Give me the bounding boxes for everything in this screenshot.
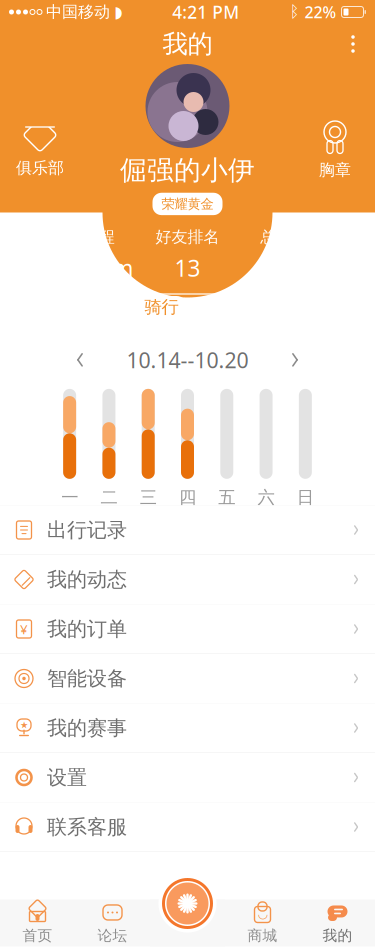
staticText: 徒步 <box>196 296 230 318</box>
button[interactable]: 俱乐部 <box>0 64 80 178</box>
staticText: 胸章 <box>319 160 351 180</box>
button[interactable]: 联系客服 <box>0 802 375 851</box>
staticText: 商城 <box>247 926 277 944</box>
staticText: 我的订单 <box>47 617 127 641</box>
staticText: 联系客服 <box>47 815 127 839</box>
staticText: 四 <box>179 487 196 508</box>
staticText: 出行记录 <box>47 518 127 542</box>
button[interactable]: 我的 <box>300 899 375 946</box>
button[interactable]: 论坛 <box>75 899 150 946</box>
button[interactable]: 胸章 <box>295 64 375 180</box>
button[interactable]: 骑行 <box>135 296 187 318</box>
staticText: 倔强的小伊 <box>120 154 255 187</box>
button[interactable]: 出行记录 <box>0 505 375 554</box>
staticText: 荣耀黄金 <box>161 196 213 212</box>
staticText: 骑行 <box>144 296 178 318</box>
staticText: ★ <box>20 720 28 730</box>
staticText: 总里程 <box>67 227 115 247</box>
staticText: 13 <box>174 253 200 283</box>
staticText: 智能设备 <box>47 666 127 691</box>
staticText: 4:21 PM <box>172 0 239 23</box>
staticText: 三 <box>140 487 157 508</box>
button[interactable]: Previous week <box>58 345 102 375</box>
staticText: 265h <box>258 253 311 283</box>
staticText: ◡ <box>257 907 267 920</box>
button[interactable]: More <box>331 22 375 66</box>
button[interactable]: ★ <box>0 703 375 752</box>
staticText: 好友排名 <box>155 227 219 247</box>
staticText: 俱乐部 <box>16 158 64 178</box>
staticText: 五 <box>218 487 235 508</box>
button[interactable]: ◡ <box>225 899 300 946</box>
button[interactable]: 徒步 <box>187 296 239 318</box>
button[interactable]: Next week <box>273 345 317 375</box>
staticText: 我的 <box>322 926 352 944</box>
button[interactable]: 设置 <box>0 753 375 802</box>
staticText: 日 <box>297 487 314 508</box>
button[interactable]: ¥ <box>0 604 375 653</box>
staticText: 设置 <box>47 765 87 790</box>
staticText: 我的 <box>162 28 212 59</box>
staticText: ᛒ <box>289 4 299 20</box>
staticText: ◗ <box>114 3 122 21</box>
staticText: 5692km <box>48 253 133 283</box>
staticText: 总时间 <box>260 227 308 247</box>
staticText: 首页 <box>22 926 52 944</box>
staticText: 我的赛事 <box>47 716 127 740</box>
staticText: 六 <box>258 487 275 508</box>
button[interactable]: 首页 <box>0 899 75 946</box>
button[interactable]: 我的动态 <box>0 555 375 604</box>
staticText: 论坛 <box>97 926 127 944</box>
staticText: 我的动态 <box>47 567 127 592</box>
button[interactable]: 智能设备 <box>0 654 375 703</box>
staticText: 一 <box>61 487 78 508</box>
staticText: ¥ <box>20 620 28 638</box>
staticText: 10.14--10.20 <box>126 346 248 374</box>
staticText: 22% <box>304 1 336 23</box>
button[interactable]: Ride <box>158 874 216 932</box>
staticText: 二 <box>100 487 117 508</box>
staticText: 中国移动 <box>46 2 110 22</box>
